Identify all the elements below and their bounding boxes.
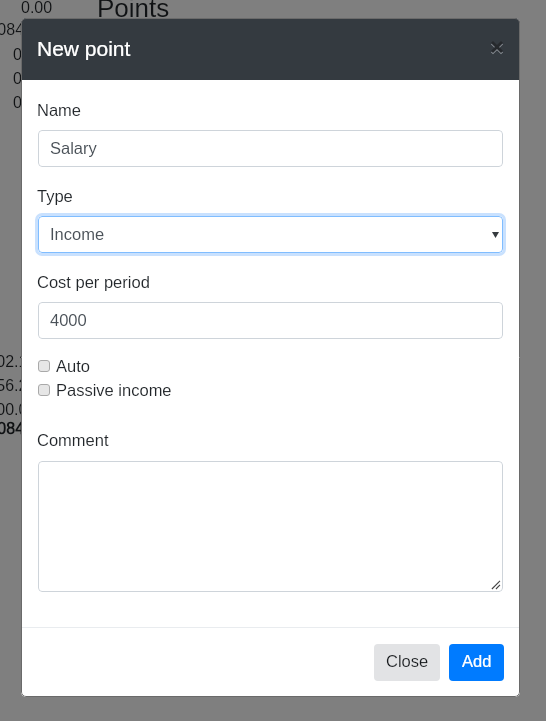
staticText: Close (386, 652, 429, 670)
staticText: 0.00 (13, 46, 45, 64)
staticText: Passive income (56, 381, 172, 399)
staticText: 0.00 (13, 70, 45, 88)
staticText: 1 084.32 (0, 21, 47, 39)
button[interactable]: Income (38, 216, 503, 253)
staticText: 3 084.12 (0, 420, 47, 438)
staticText: Income (50, 225, 105, 243)
staticText: Name (37, 101, 82, 119)
staticText: 0.00 (13, 94, 45, 112)
staticText: Comment (37, 431, 109, 449)
button[interactable]: Salary (38, 130, 503, 167)
staticText: New point (37, 37, 131, 60)
button[interactable]: Add (449, 644, 504, 681)
button[interactable]: Passive income (38, 380, 172, 399)
staticText: Add (462, 652, 492, 670)
button[interactable]: Comment (38, 461, 503, 592)
staticText: Cost per period (37, 273, 150, 291)
staticText: Type (37, 187, 73, 205)
staticText: Auto (56, 357, 90, 375)
staticText: 0.00 (21, 0, 53, 17)
staticText: 4000 (50, 311, 87, 329)
staticText: 2 156.25 (0, 377, 37, 395)
button[interactable]: Close (374, 644, 440, 681)
button[interactable]: Auto (38, 356, 90, 375)
staticText: Salary (50, 139, 97, 157)
button[interactable]: Close (479, 29, 515, 65)
staticText: Points (97, 0, 170, 22)
staticText: 1 200.00 (0, 401, 37, 419)
staticText: 1 102.12 (0, 353, 37, 371)
button[interactable]: 4000 (38, 302, 503, 339)
